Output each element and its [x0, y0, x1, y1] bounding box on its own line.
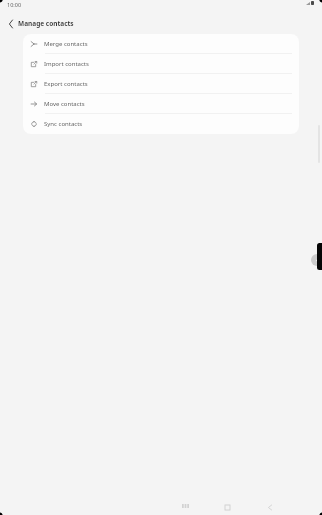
button[interactable]: Back: [1, 14, 20, 33]
button[interactable]: Export contacts: [23, 74, 299, 94]
staticText: Manage contacts: [18, 19, 74, 28]
button[interactable]: Home: [215, 495, 239, 515]
button[interactable]: Sync contacts: [23, 114, 299, 134]
staticText: Move contacts: [44, 100, 85, 108]
staticText: 10:00: [7, 1, 22, 8]
button[interactable]: Import contacts: [23, 54, 299, 74]
button[interactable]: Move contacts: [23, 94, 299, 114]
button[interactable]: Edge panel: [311, 254, 322, 266]
staticText: Import contacts: [44, 60, 89, 68]
staticText: Merge contacts: [44, 40, 88, 48]
button[interactable]: Merge contacts: [23, 34, 299, 54]
button[interactable]: Recents: [173, 494, 197, 515]
staticText: Sync contacts: [44, 120, 83, 128]
staticText: Export contacts: [44, 80, 88, 88]
